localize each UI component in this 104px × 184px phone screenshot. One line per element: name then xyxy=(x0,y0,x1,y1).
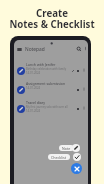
staticText: 14-01-2024 xyxy=(26,109,41,113)
button[interactable]: Pin xyxy=(76,69,80,73)
staticText: Notepad xyxy=(25,46,45,53)
button[interactable]: Note xyxy=(59,145,74,151)
staticText: Birthday celebration with family xyxy=(26,67,67,71)
staticText: Lunch with Jenifer xyxy=(26,62,56,67)
button[interactable]: Pin xyxy=(76,107,80,111)
button[interactable]: Travel diary xyxy=(14,100,88,118)
staticText: Travel diary xyxy=(26,100,45,105)
staticText: My first journey solo with over all xyxy=(26,105,68,109)
button[interactable]: Checklist xyxy=(48,154,70,160)
button[interactable]: Lunch with Jenifer xyxy=(14,62,88,80)
button[interactable]: Edit xyxy=(71,69,75,73)
staticText: 14-01-2024 xyxy=(26,71,41,75)
button[interactable]: Menu xyxy=(17,47,22,52)
button[interactable]: Assignment submission xyxy=(14,81,88,99)
staticText: Assignment submission xyxy=(26,81,66,86)
button[interactable]: Search xyxy=(76,46,82,52)
button[interactable]: More xyxy=(82,106,86,110)
button[interactable]: More xyxy=(82,87,86,91)
button[interactable]: Create note xyxy=(72,144,80,152)
staticText: Create xyxy=(36,7,68,20)
button[interactable]: More xyxy=(82,68,86,72)
staticText: Note xyxy=(62,146,71,151)
staticText: Checklist xyxy=(51,155,67,160)
button[interactable]: More options xyxy=(83,46,88,51)
staticText: 14-01-2024 xyxy=(26,86,41,90)
button[interactable]: Create checklist xyxy=(73,153,81,161)
button[interactable]: Close menu xyxy=(71,163,82,174)
staticText: Notes & Checklist xyxy=(9,18,95,31)
button[interactable]: Pin xyxy=(76,88,80,92)
